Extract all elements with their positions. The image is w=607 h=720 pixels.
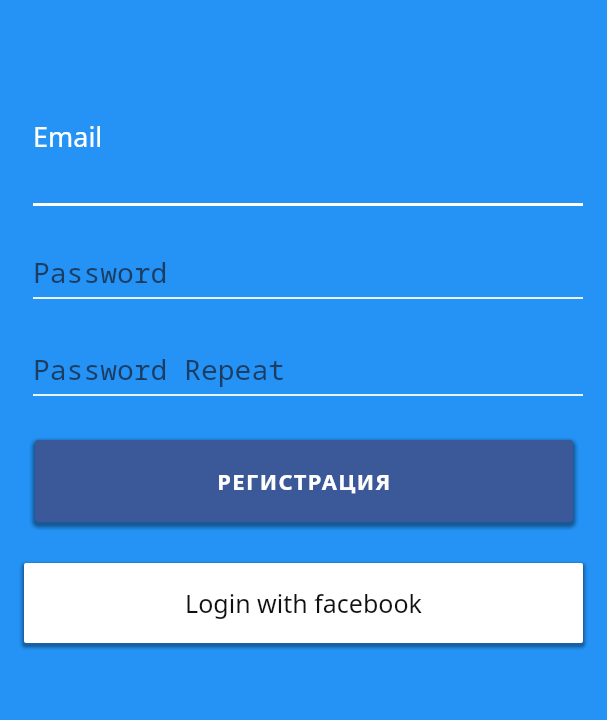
button[interactable]: РЕГИСТРАЦИЯ [35, 440, 573, 522]
button[interactable]: Email [33, 118, 583, 206]
staticText: Password [33, 253, 168, 291]
staticText: Email [33, 118, 103, 155]
button[interactable]: Password Repeat [33, 350, 583, 396]
staticText: Password Repeat [33, 350, 286, 388]
staticText: РЕГИСТРАЦИЯ [217, 466, 392, 496]
button[interactable]: Password [33, 253, 583, 299]
staticText: Login with facebook [185, 586, 422, 620]
button[interactable]: Login with facebook [24, 563, 583, 643]
